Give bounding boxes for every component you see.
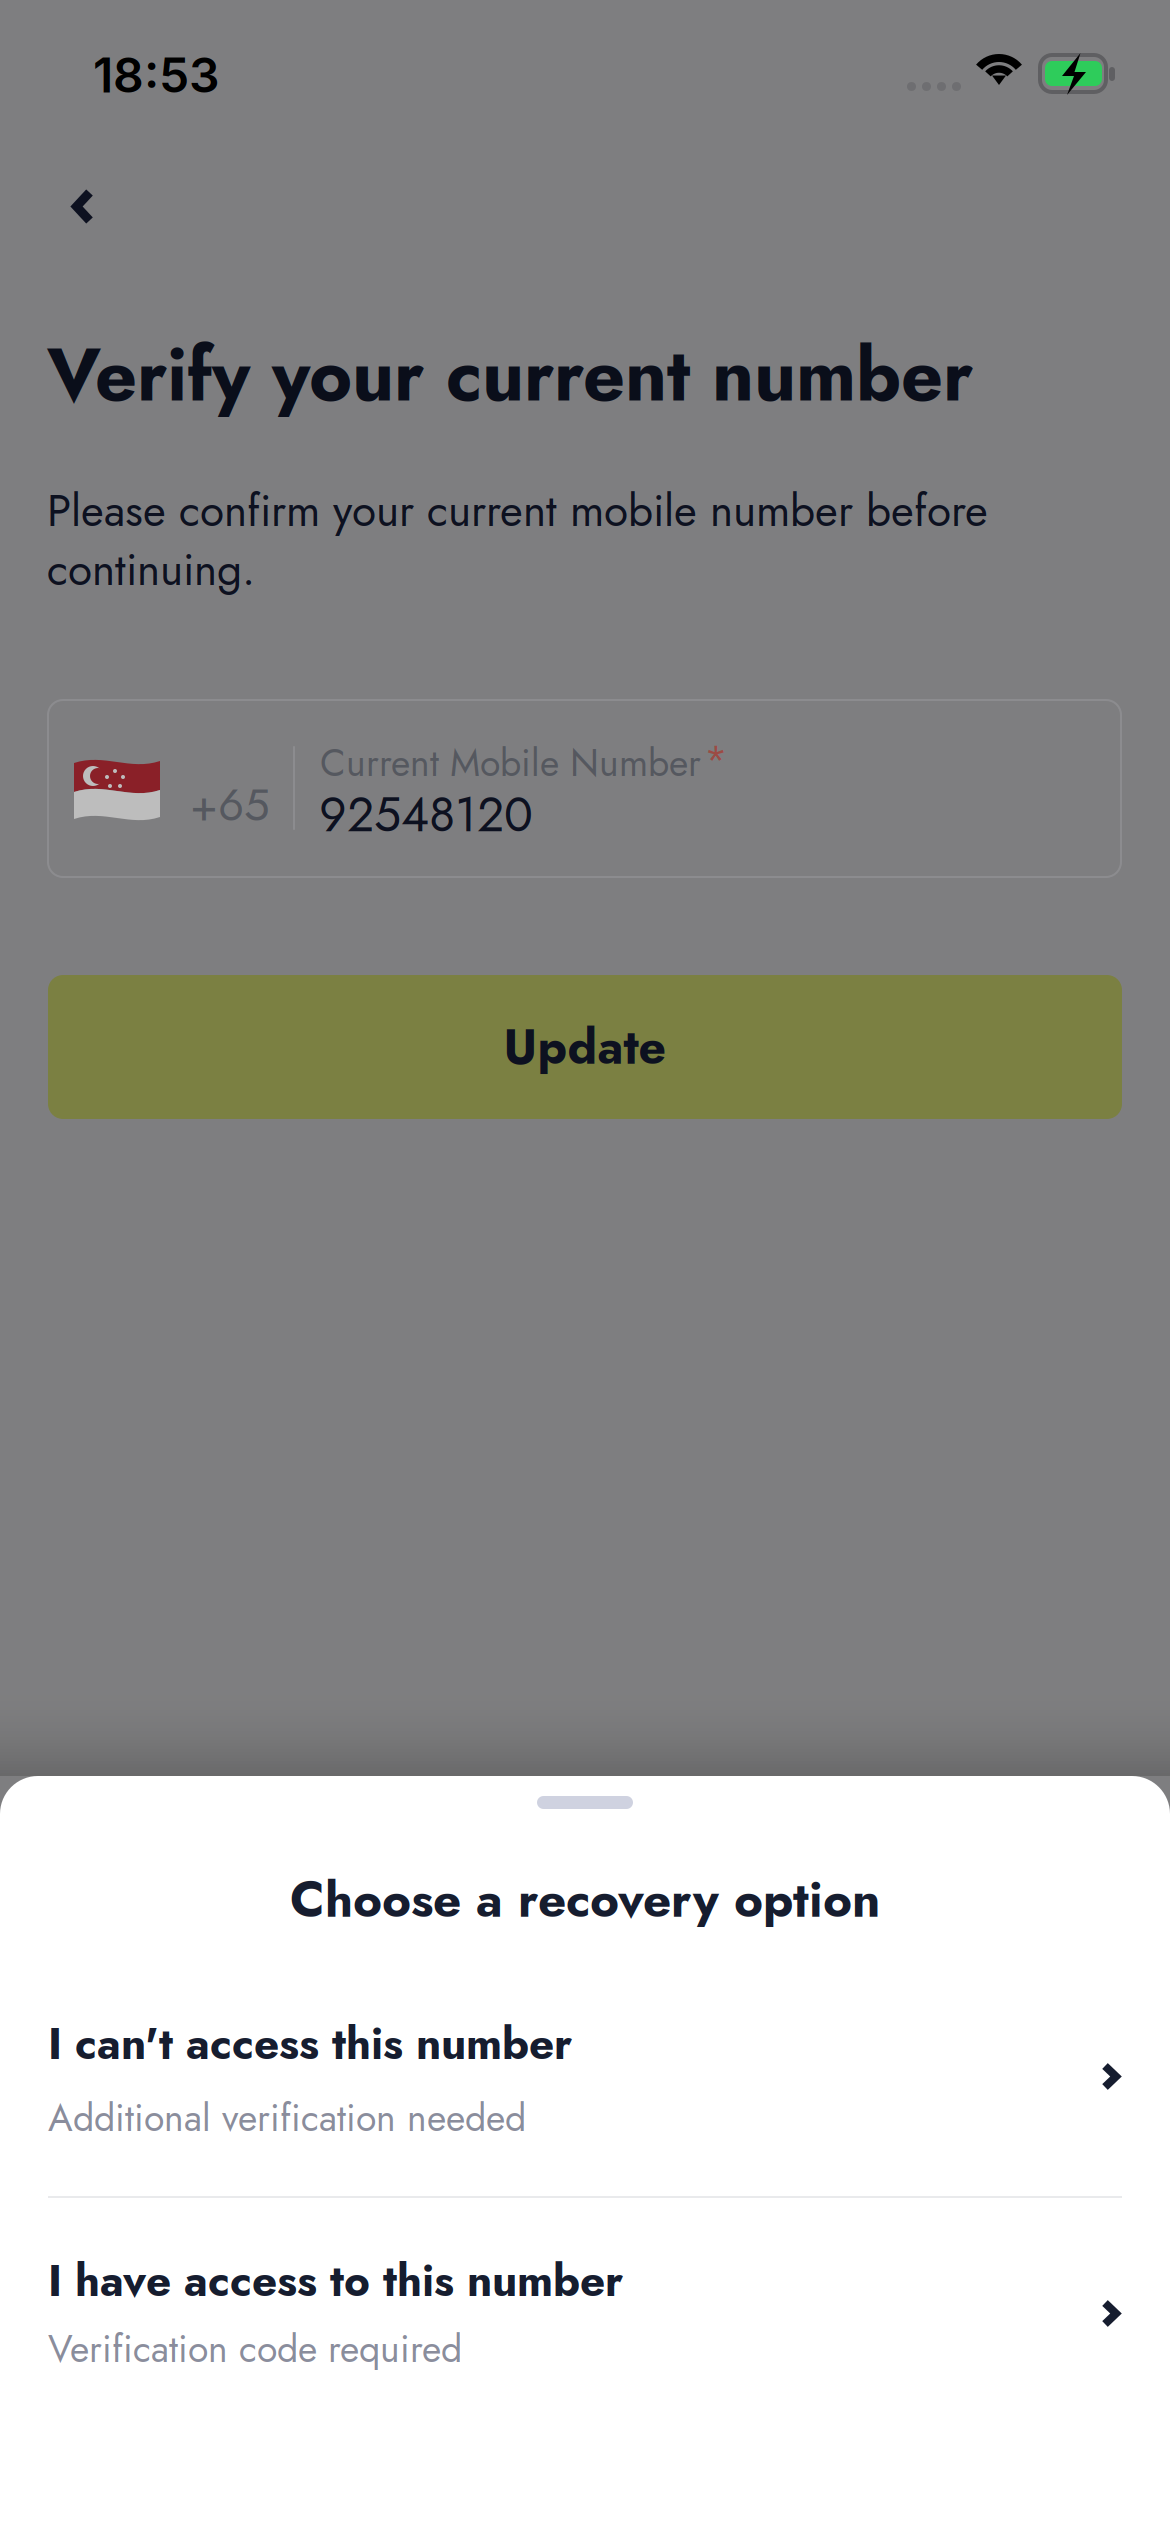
staticText: Please confirm your current mobile numbe… (47, 479, 988, 543)
button[interactable]: Back (0, 152, 150, 261)
staticText: I have access to this number (48, 2249, 623, 2313)
staticText: I can't access this number (48, 2012, 572, 2076)
staticText: Choose a recovery option (290, 1864, 880, 1935)
staticText: Additional verification needed (48, 2091, 526, 2145)
staticText: 18:53 (93, 46, 220, 104)
staticText: Current Mobile Number (320, 736, 701, 790)
staticText: Verification code required (48, 2322, 462, 2376)
staticText: +65 (190, 772, 270, 837)
button[interactable]: I have access to this number (0, 2198, 1170, 2422)
button[interactable]: I can't access this number (0, 1976, 1170, 2186)
button[interactable]: Update (48, 975, 1122, 1119)
staticText: * (704, 731, 728, 789)
staticText: 92548120 (319, 780, 533, 849)
staticText: Verify your current number (47, 322, 973, 428)
staticText: continuing. (47, 538, 255, 602)
staticText: Update (503, 1012, 666, 1082)
